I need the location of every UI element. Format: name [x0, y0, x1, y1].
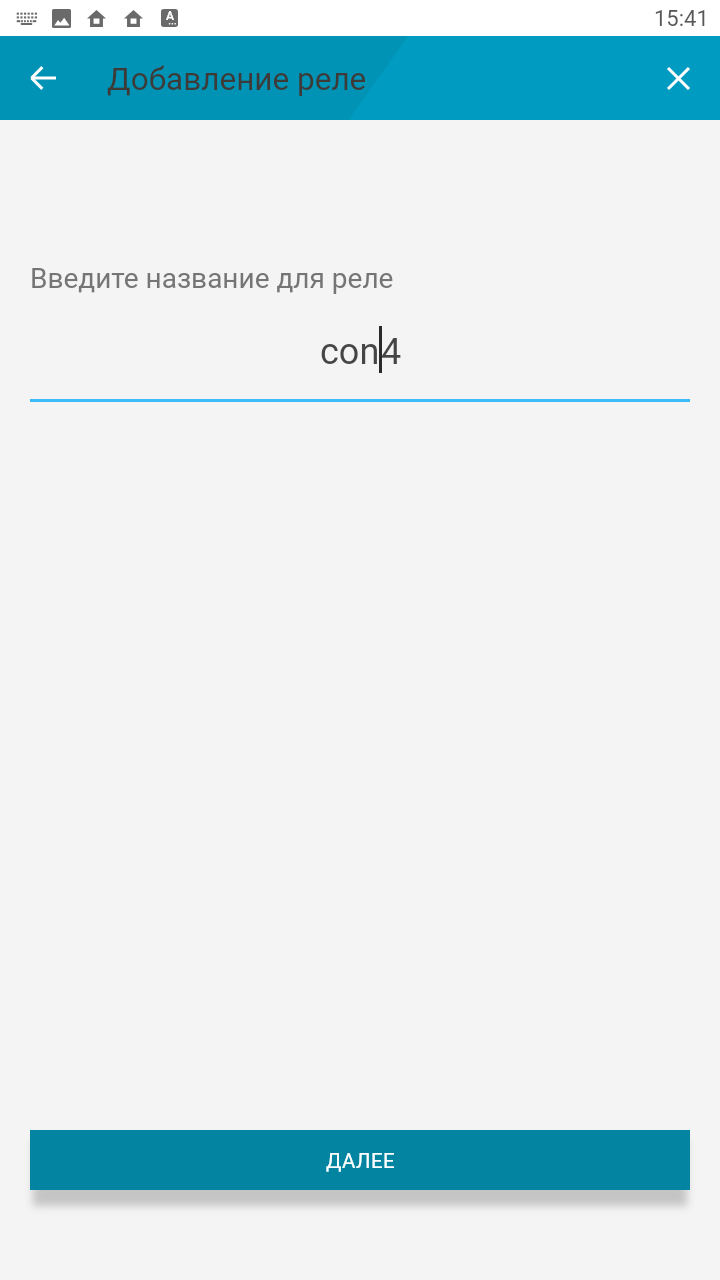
button[interactable]: Back — [19, 54, 67, 102]
staticText: 4 — [381, 331, 402, 373]
staticText: 15:41 — [654, 6, 709, 32]
button[interactable]: con — [0, 321, 720, 377]
staticText: ДАЛЕЕ — [326, 1149, 396, 1173]
staticText: Добавление реле — [107, 61, 367, 98]
staticText: Введите название для реле — [30, 262, 394, 295]
staticText: con — [320, 331, 380, 373]
staticText: A — [166, 9, 174, 23]
button[interactable]: Close — [654, 54, 702, 102]
button[interactable]: ДАЛЕЕ — [30, 1130, 690, 1190]
